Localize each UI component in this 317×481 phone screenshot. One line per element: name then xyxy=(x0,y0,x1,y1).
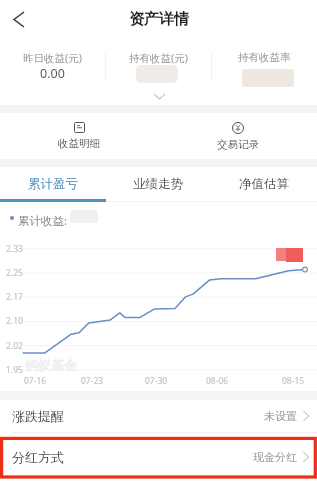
button[interactable]: Back xyxy=(0,0,38,38)
staticText: 2.25 xyxy=(6,267,23,279)
button[interactable]: 交易记录 xyxy=(158,113,317,159)
staticText: 交易记录 xyxy=(217,138,259,151)
staticText: 2.33 xyxy=(6,243,23,255)
button[interactable]: 累计盈亏 xyxy=(0,167,105,202)
staticText: 0.00 xyxy=(40,65,65,82)
button[interactable]: Expand details xyxy=(137,88,181,105)
staticText: 未设置 xyxy=(264,409,297,423)
button[interactable]: 涨跌提醒 xyxy=(0,400,317,432)
staticText: 涨跌提醒 xyxy=(12,408,64,424)
button[interactable]: 分红方式 xyxy=(0,433,317,481)
staticText: 07-30 xyxy=(145,375,168,387)
staticText: 现金分红 xyxy=(253,450,297,464)
staticText: 业绩走势 xyxy=(133,176,183,192)
staticText: 净值估算 xyxy=(239,176,289,192)
button[interactable]: 净值估算 xyxy=(211,167,317,202)
staticText: 2.17 xyxy=(6,291,23,303)
staticText: 07-23 xyxy=(81,375,104,387)
staticText: 累计盈亏 xyxy=(28,176,78,192)
button[interactable]: 业绩走势 xyxy=(105,167,211,202)
staticText: 昨日收益(元) xyxy=(23,51,82,65)
staticText: 持有收益(元) xyxy=(129,51,188,65)
staticText: 分红方式 xyxy=(12,449,64,465)
staticText: 收益明细 xyxy=(58,137,100,150)
staticText: 累计收益: xyxy=(18,213,68,227)
staticText: 持有收益率 xyxy=(238,51,291,64)
staticText: 1.95 xyxy=(6,364,23,376)
staticText: 2.02 xyxy=(6,340,23,352)
staticText: 07-16 xyxy=(24,375,47,387)
staticText: 08-06 xyxy=(206,375,229,387)
staticText: 资产详情 xyxy=(129,10,189,29)
staticText: 2.10 xyxy=(6,315,23,327)
button[interactable]: 收益明细 xyxy=(0,113,158,159)
staticText: 08-15 xyxy=(282,375,305,387)
staticText: 蚂蚁基金 xyxy=(25,357,77,373)
